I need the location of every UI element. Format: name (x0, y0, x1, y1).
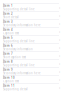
staticText: Item 2 (3, 12, 13, 15)
button[interactable]: Item 2 (0, 11, 64, 19)
button[interactable]: Item 11 (0, 83, 64, 91)
staticText: Supporting detail (3, 87, 28, 91)
button[interactable]: Item 7 (0, 51, 64, 59)
staticText: Secondary information (3, 47, 33, 51)
staticText: Item 11 (3, 84, 15, 87)
staticText: Item 3 (3, 20, 13, 23)
staticText: › (59, 53, 60, 58)
button[interactable]: Item 1 (0, 3, 64, 11)
staticText: Secondary information here (3, 23, 41, 27)
staticText: Item 7 (3, 52, 13, 55)
staticText: › (59, 37, 60, 42)
staticText: › (59, 21, 60, 26)
staticText: Item 5 (3, 36, 13, 39)
staticText: Item 9 (3, 68, 13, 71)
button[interactable]: Item 5 (0, 35, 64, 43)
staticText: Supporting detail line (3, 7, 35, 11)
staticText: Item 6 (3, 44, 13, 47)
staticText: Secondary information here (3, 71, 41, 75)
staticText: › (59, 13, 60, 18)
staticText: Short detail (3, 15, 19, 19)
staticText: Item 10 (3, 76, 15, 79)
button[interactable]: Item 9 (0, 67, 64, 75)
staticText: Supporting detail line (3, 63, 35, 67)
staticText: › (59, 29, 60, 34)
button[interactable]: Item 6 (0, 43, 64, 51)
staticText: Item 4 (3, 28, 13, 31)
button[interactable]: Item 4 (0, 27, 64, 35)
staticText: Supporting detail line (3, 39, 35, 43)
staticText: Caption text (3, 79, 19, 83)
button[interactable]: Item 3 (0, 19, 64, 27)
staticText: Item 1 (3, 4, 13, 7)
staticText: › (59, 5, 60, 10)
button[interactable]: Item 10 (0, 75, 64, 83)
staticText: › (59, 61, 60, 66)
staticText: › (59, 69, 60, 74)
staticText: Caption text (3, 31, 19, 35)
button[interactable]: Item 8 (0, 59, 64, 67)
staticText: Short caption text (3, 55, 26, 59)
staticText: › (59, 77, 60, 82)
staticText: › (59, 85, 60, 90)
staticText: Item 8 (3, 60, 13, 63)
staticText: › (59, 45, 60, 50)
